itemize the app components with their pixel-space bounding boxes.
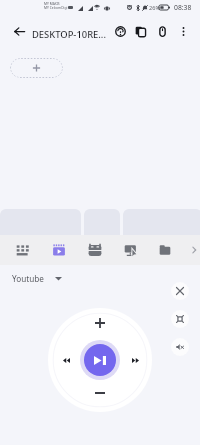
button[interactable]: More xyxy=(180,235,200,265)
button[interactable]: Keyboard xyxy=(9,235,37,265)
button[interactable]: Help xyxy=(110,21,131,42)
staticText: 26% xyxy=(149,4,161,12)
button[interactable]: Close xyxy=(171,282,189,300)
button[interactable]: Files xyxy=(151,235,179,265)
button[interactable]: More options xyxy=(173,21,194,42)
staticText: Youtube xyxy=(12,273,44,284)
button[interactable]: Next track xyxy=(124,349,146,371)
button[interactable]: Youtube xyxy=(8,271,66,286)
button[interactable]: Volume down xyxy=(89,382,111,404)
staticText: MY CelcomDigi xyxy=(44,5,68,9)
button[interactable]: Android apps xyxy=(81,235,109,265)
button[interactable]: Mouse xyxy=(152,21,173,42)
button[interactable]: Volume up xyxy=(89,312,111,334)
button[interactable]: Media player xyxy=(45,235,73,265)
staticText: 08:38 xyxy=(174,3,192,12)
button[interactable]: Back xyxy=(9,21,30,42)
button[interactable]: Copy xyxy=(130,21,151,42)
staticText: MY MAXIS xyxy=(44,1,60,5)
button[interactable]: Add desktop xyxy=(10,58,63,78)
button[interactable]: Mute xyxy=(171,338,189,356)
button[interactable]: Previous track xyxy=(55,349,77,371)
button[interactable]: Play or pause xyxy=(84,344,116,376)
button[interactable]: Remote screen xyxy=(117,235,145,265)
button[interactable]: Fit to screen xyxy=(171,310,189,328)
staticText: DESKTOP-10RE... xyxy=(32,28,106,41)
